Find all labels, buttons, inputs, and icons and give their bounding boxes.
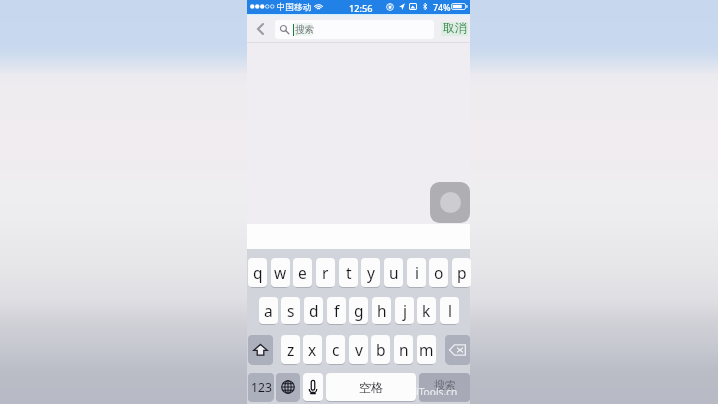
button[interactable]: s [281, 297, 300, 324]
button[interactable]: r [316, 258, 335, 287]
button[interactable]: a [259, 297, 278, 324]
staticText: r [322, 262, 329, 283]
staticText: d [309, 300, 319, 321]
button[interactable]: b [371, 335, 390, 364]
button[interactable]: c [326, 335, 345, 364]
staticText: w [274, 262, 287, 283]
button[interactable]: 123 [248, 373, 274, 401]
staticText: q [253, 262, 263, 283]
button[interactable]: e [293, 258, 312, 287]
staticText: s [287, 300, 295, 321]
staticText: y [367, 262, 375, 283]
staticText: 12:56 [349, 2, 373, 15]
button[interactable]: z [281, 335, 300, 364]
button[interactable]: Change keyboard [276, 373, 300, 401]
button[interactable]: 取消 [439, 17, 470, 40]
button[interactable]: w [271, 258, 290, 287]
staticText: h [377, 300, 387, 321]
button[interactable]: h [372, 297, 391, 324]
button[interactable]: Shift [248, 335, 273, 364]
button[interactable]: n [394, 335, 413, 364]
button[interactable]: Backspace [445, 335, 470, 364]
staticText: a [264, 300, 273, 321]
button[interactable]: m [417, 335, 436, 364]
staticText: t [346, 262, 352, 283]
button[interactable]: i [407, 258, 426, 287]
button[interactable]: j [395, 297, 414, 324]
staticText: n [399, 339, 409, 360]
button[interactable]: f [327, 297, 346, 324]
staticText: b [376, 339, 386, 360]
staticText: 搜索 [295, 24, 315, 36]
staticText: x [308, 339, 317, 360]
button[interactable]: t [339, 258, 358, 287]
staticText: k [422, 300, 431, 321]
button[interactable]: p [452, 258, 471, 287]
staticText: l [448, 300, 452, 321]
staticText: 取消 [443, 21, 467, 36]
staticText: iTools.cn [416, 385, 458, 395]
button[interactable]: Back [250, 18, 271, 40]
staticText: m [419, 339, 434, 360]
staticText: z [287, 339, 295, 360]
button[interactable]: g [349, 297, 368, 324]
staticText: 中国移动 [277, 2, 312, 13]
button[interactable]: k [417, 297, 436, 324]
button[interactable]: l [440, 297, 459, 324]
button[interactable]: o [429, 258, 448, 287]
staticText: e [298, 262, 307, 283]
staticText: v [355, 339, 363, 360]
button[interactable]: x [303, 335, 322, 364]
staticText: 123 [251, 379, 272, 396]
staticText: u [389, 262, 399, 283]
button[interactable]: v [349, 335, 368, 364]
staticText: g [354, 300, 364, 321]
staticText: 搜索 [434, 378, 456, 392]
button[interactable]: y [361, 258, 380, 287]
staticText: o [434, 262, 444, 283]
button[interactable]: u [384, 258, 403, 287]
button[interactable]: Voice input [303, 373, 323, 401]
staticText: j [403, 300, 407, 321]
staticText: i [415, 262, 419, 283]
button[interactable]: d [304, 297, 323, 324]
button[interactable]: 空格 [326, 373, 416, 401]
staticText: f [334, 300, 340, 321]
staticText: 空格 [359, 380, 384, 395]
staticText: c [332, 339, 340, 360]
button[interactable]: 搜索 [275, 20, 434, 39]
staticText: p [457, 262, 467, 283]
button[interactable]: q [248, 258, 267, 287]
staticText: 74% [433, 2, 451, 14]
button[interactable]: 搜索 [419, 373, 470, 401]
